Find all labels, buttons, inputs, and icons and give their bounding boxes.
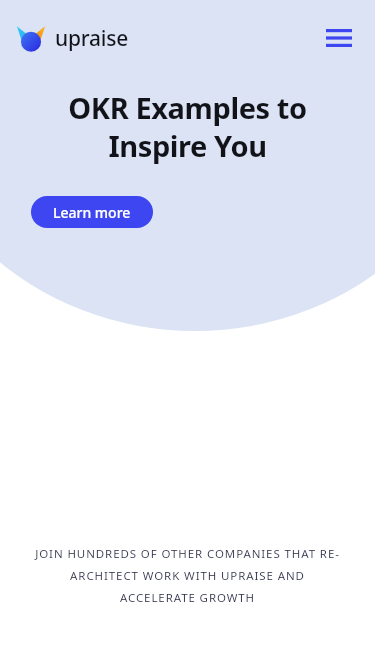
- button[interactable]: Learn more: [31, 196, 153, 228]
- staticText: OKR Examples to Inspire You: [22, 88, 353, 165]
- staticText: JOIN HUNDREDS OF OTHER COMPANIES THAT RE…: [32, 546, 343, 606]
- staticText: upraise: [55, 24, 129, 53]
- button[interactable]: Open menu: [317, 16, 361, 60]
- button[interactable]: upraise: [16, 23, 129, 53]
- staticText: Learn more: [53, 203, 131, 222]
